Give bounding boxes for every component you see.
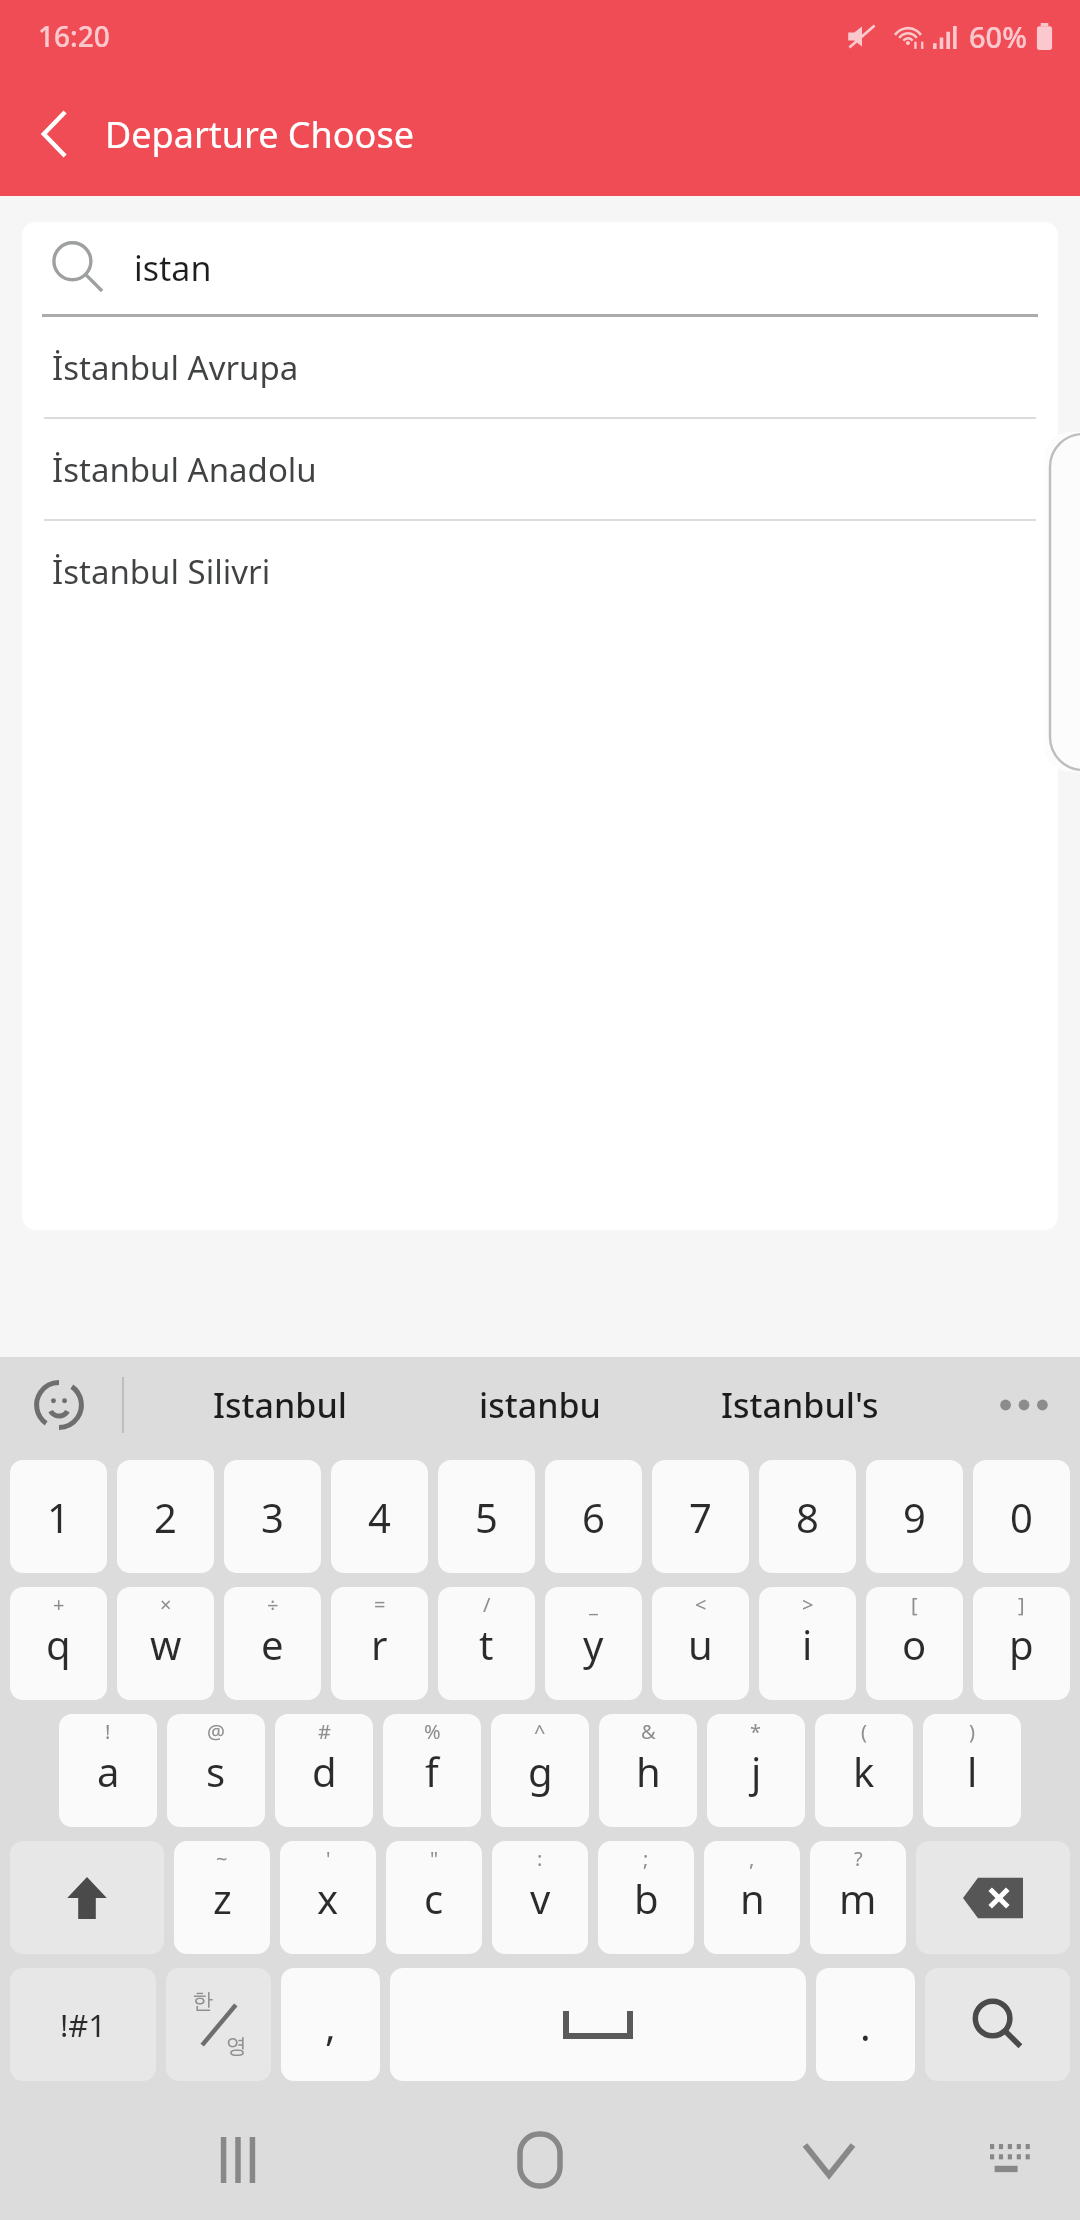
button[interactable]: istan [22,222,1058,314]
button[interactable]: Hide keyboard [783,2114,875,2206]
button[interactable]: ; [598,1841,694,1954]
staticText: 1 [47,1490,70,1544]
staticText: . [860,1998,871,2052]
staticText: : [537,1845,543,1872]
staticText: Departure Choose [105,110,414,159]
staticText: İstanbul Anadolu [52,447,317,492]
button[interactable]: = [331,1587,428,1700]
button[interactable]: Back [20,99,90,169]
staticText: @ [207,1718,225,1745]
button[interactable]: Recents [192,2114,284,2206]
staticText: r [371,1617,388,1671]
button[interactable]: Istanbul's [670,1357,930,1453]
staticText: e [261,1617,284,1671]
button[interactable]: _ [545,1587,642,1700]
staticText: istan [134,245,212,291]
button[interactable]: 6 [545,1460,642,1573]
button[interactable]: !#1 [10,1968,156,2081]
staticText: 5 [475,1490,498,1544]
button[interactable]: 0 [973,1460,1070,1573]
button[interactable]: More suggestions [994,1375,1054,1435]
button[interactable]: Space [390,1968,806,2081]
staticText: m [839,1871,877,1925]
button[interactable]: × [117,1587,214,1700]
button[interactable]: # [275,1714,373,1827]
button[interactable]: 7 [652,1460,749,1573]
button[interactable]: Shift [10,1841,164,1954]
staticText: x [317,1871,339,1925]
button[interactable]: ] [973,1587,1070,1700]
staticText: ( [861,1718,867,1745]
button[interactable]: Backspace [916,1841,1070,1954]
button[interactable]: 5 [438,1460,535,1573]
staticText: j [751,1744,762,1798]
button[interactable]: . [816,1968,915,2081]
button[interactable]: ! [59,1714,157,1827]
staticText: = [374,1591,386,1618]
button[interactable]: 4 [331,1460,428,1573]
staticText: 영 [226,2033,247,2059]
button[interactable]: İstanbul Avrupa [22,317,1058,417]
staticText: z [213,1871,232,1925]
button[interactable]: ^ [491,1714,589,1827]
staticText: y [583,1617,604,1671]
staticText: 3 [261,1490,284,1544]
button[interactable]: Change keyboard [972,2119,1054,2201]
staticText: f [425,1744,439,1798]
staticText: p [1009,1617,1034,1671]
staticText: o [902,1617,927,1671]
button[interactable]: * [707,1714,805,1827]
button[interactable]: & [599,1714,697,1827]
staticText: _ [589,1591,598,1618]
button[interactable]: / [438,1587,535,1700]
staticText: [ [911,1591,918,1618]
button[interactable]: [ [866,1587,963,1700]
button[interactable]: İstanbul Silivri [22,521,1058,621]
staticText: & [641,1718,656,1745]
staticText: b [634,1871,659,1925]
button[interactable]: 1 [10,1460,107,1573]
button[interactable]: ? [810,1841,906,1954]
staticText: % [424,1718,441,1745]
button[interactable]: Search [925,1968,1070,2081]
staticText: ) [969,1718,975,1745]
staticText: 6 [582,1490,605,1544]
button[interactable]: istanbu [410,1357,670,1453]
staticText: n [740,1871,765,1925]
button[interactable]: İstanbul Anadolu [22,419,1058,519]
button[interactable]: + [10,1587,107,1700]
button[interactable]: % [383,1714,481,1827]
button[interactable]: ~ [174,1841,270,1954]
button[interactable]: 3 [224,1460,321,1573]
staticText: ! [105,1718,111,1745]
staticText: * [750,1718,762,1745]
staticText: k [853,1744,875,1798]
staticText: s [206,1744,226,1798]
button[interactable]: Language [166,1968,271,2081]
button[interactable]: > [759,1587,856,1700]
button[interactable]: ( [815,1714,913,1827]
staticText: , [749,1845,755,1872]
button[interactable]: , [281,1968,380,2081]
staticText: i [802,1617,813,1671]
button[interactable]: 2 [117,1460,214,1573]
button[interactable]: " [386,1841,482,1954]
staticText: İstanbul Silivri [52,549,271,594]
button[interactable]: ) [923,1714,1021,1827]
button[interactable]: 8 [759,1460,856,1573]
button[interactable]: @ [167,1714,265,1827]
staticText: 0 [1010,1490,1033,1544]
button[interactable]: 9 [866,1460,963,1573]
button[interactable]: ÷ [224,1587,321,1700]
staticText: t [479,1617,494,1671]
button[interactable]: Istanbul [150,1357,410,1453]
button[interactable]: Emoji [26,1372,92,1438]
button[interactable]: < [652,1587,749,1700]
button[interactable]: , [704,1841,800,1954]
button[interactable]: ' [280,1841,376,1954]
button[interactable]: : [492,1841,588,1954]
staticText: < [695,1591,707,1618]
button[interactable]: Home [494,2114,586,2206]
staticText: # [318,1718,331,1745]
staticText: g [528,1744,553,1798]
